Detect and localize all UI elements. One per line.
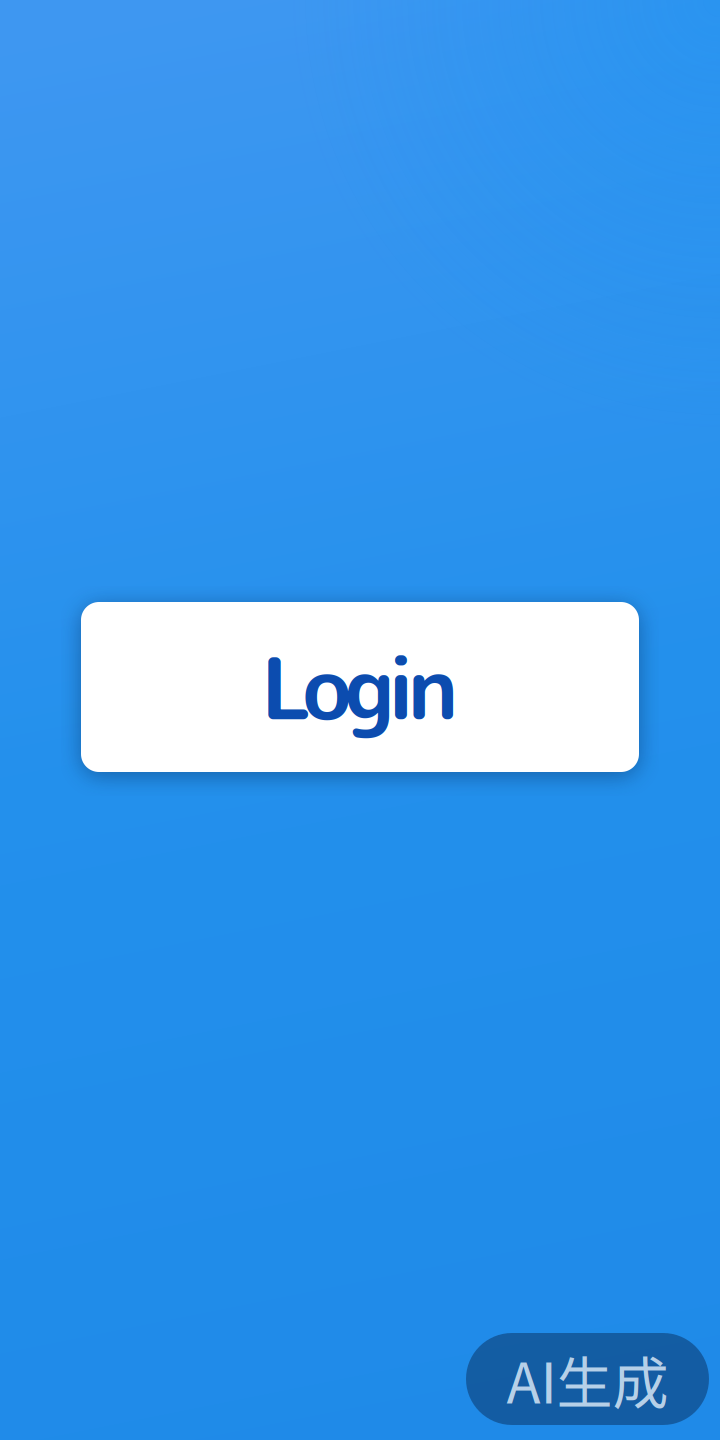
staticText: Login [261,627,458,746]
button[interactable]: Login [81,602,639,772]
staticText: AI生成 [506,1338,668,1420]
